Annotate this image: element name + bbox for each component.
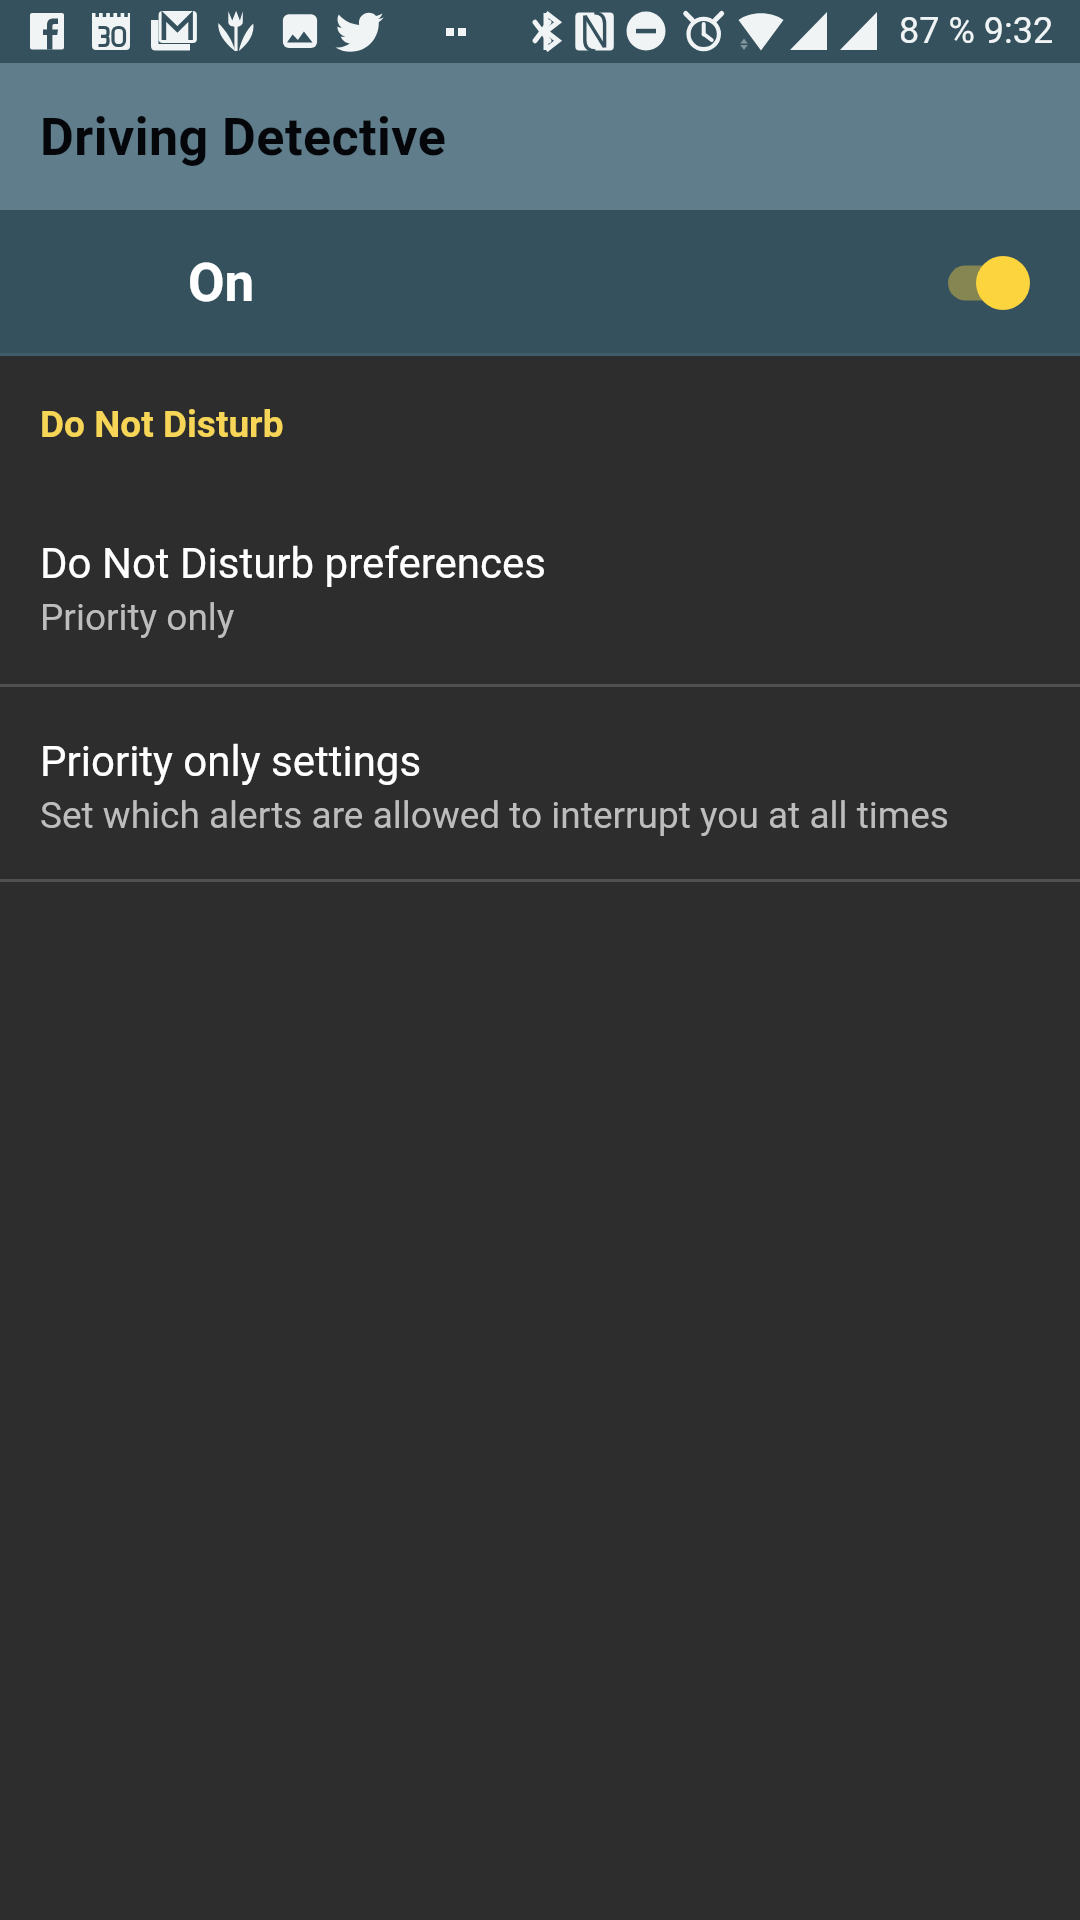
- staticText: Driving Detective: [40, 107, 447, 168]
- staticText: Do Not Disturb: [40, 403, 284, 446]
- staticText: Priority only settings: [40, 737, 422, 786]
- other: Toggle driving mode on: [920, 210, 1080, 356]
- staticText: Do Not Disturb preferences: [40, 539, 546, 588]
- staticText: 87 % 9:32: [899, 10, 1054, 52]
- staticText: Set which alerts are allowed to interrup…: [40, 794, 949, 837]
- button[interactable]: Do Not Disturb preferences: [0, 489, 1080, 684]
- button[interactable]: Priority only settings: [0, 687, 1080, 879]
- staticText: On: [188, 252, 255, 314]
- staticText: Priority only: [40, 596, 235, 639]
- button[interactable]: On: [0, 210, 1080, 356]
